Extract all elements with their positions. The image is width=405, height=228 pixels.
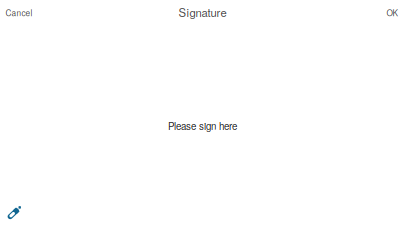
staticText: OK [387, 7, 399, 18]
button[interactable]: Pen tool [0, 201, 27, 228]
button[interactable]: OK [379, 1, 405, 23]
staticText: Please sign here [168, 119, 237, 133]
staticText: Signature [178, 4, 226, 20]
staticText: Cancel [5, 7, 32, 18]
button[interactable]: Cancel [0, 1, 40, 23]
